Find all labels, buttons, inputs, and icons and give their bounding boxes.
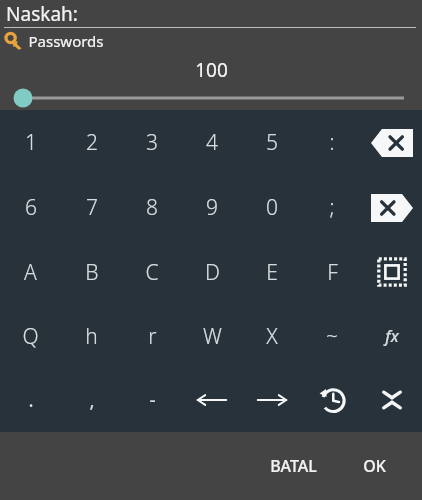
staticText: 2 (86, 128, 98, 157)
button[interactable]: OK (349, 445, 400, 487)
staticText: OK (363, 455, 386, 477)
staticText: Q (22, 322, 39, 351)
staticText: ; (329, 193, 335, 222)
button[interactable]: 1 (0, 110, 61, 175)
button[interactable]: : (302, 110, 362, 175)
staticText: X (266, 322, 278, 351)
button[interactable]: Backspace (362, 110, 422, 175)
staticText: 9 (206, 193, 218, 222)
button[interactable]: ; (302, 175, 362, 240)
staticText: E (266, 258, 278, 287)
button[interactable]: W (182, 304, 242, 368)
button[interactable]: 5 (242, 110, 302, 175)
button[interactable]: B (61, 240, 122, 304)
staticText: 7 (86, 193, 98, 222)
staticText: 1 (25, 128, 37, 157)
staticText: 0 (266, 193, 278, 222)
other: Password category (4, 30, 26, 52)
button[interactable]: , (61, 368, 122, 432)
button[interactable]: - (122, 368, 182, 432)
button[interactable]: Q (0, 304, 61, 368)
staticText: fx (385, 325, 399, 347)
button[interactable]: Delete forward (362, 175, 422, 240)
button[interactable]: 8 (122, 175, 182, 240)
staticText: Passwords (28, 31, 104, 51)
button[interactable]: r (122, 304, 182, 368)
button[interactable]: X (242, 304, 302, 368)
button[interactable]: 9 (182, 175, 242, 240)
button[interactable]: 3 (122, 110, 182, 175)
button[interactable]: Password category (0, 28, 422, 54)
staticText: C (145, 258, 159, 287)
staticText: - (149, 387, 156, 413)
staticText: ~ (326, 322, 338, 351)
button[interactable]: Select all (362, 240, 422, 304)
button[interactable]: Length slider (0, 86, 422, 110)
button[interactable]: Move cursor right (242, 368, 302, 432)
button[interactable]: 0 (242, 175, 302, 240)
button[interactable]: 7 (61, 175, 122, 240)
staticText: A (24, 258, 37, 287)
staticText: : (329, 128, 335, 157)
staticText: F (327, 258, 338, 287)
staticText: 100 (195, 57, 228, 83)
button[interactable]: History (302, 368, 362, 432)
staticText: h (85, 322, 98, 351)
button[interactable]: Functions (362, 304, 422, 368)
staticText: r (148, 322, 157, 351)
staticText: . (28, 387, 34, 413)
staticText: BATAL (270, 455, 317, 477)
staticText: 5 (266, 128, 278, 157)
button[interactable]: ~ (302, 304, 362, 368)
button[interactable]: 4 (182, 110, 242, 175)
button[interactable]: . (0, 368, 61, 432)
staticText: 8 (146, 193, 158, 222)
button[interactable]: 6 (0, 175, 61, 240)
staticText: , (89, 387, 95, 413)
staticText: 3 (146, 128, 158, 157)
button[interactable]: D (182, 240, 242, 304)
button[interactable]: BATAL (256, 445, 331, 487)
staticText: 4 (206, 128, 218, 157)
button[interactable]: C (122, 240, 182, 304)
staticText: B (85, 258, 99, 287)
button[interactable]: Move cursor left (182, 368, 242, 432)
button[interactable]: h (61, 304, 122, 368)
button[interactable]: Collapse keyboard (362, 368, 422, 432)
staticText: W (203, 322, 222, 351)
staticText: Naskah: (6, 1, 78, 27)
button[interactable]: A (0, 240, 61, 304)
staticText: 6 (25, 193, 37, 222)
staticText: D (205, 258, 220, 287)
button[interactable]: F (302, 240, 362, 304)
button[interactable]: E (242, 240, 302, 304)
button[interactable]: 2 (61, 110, 122, 175)
